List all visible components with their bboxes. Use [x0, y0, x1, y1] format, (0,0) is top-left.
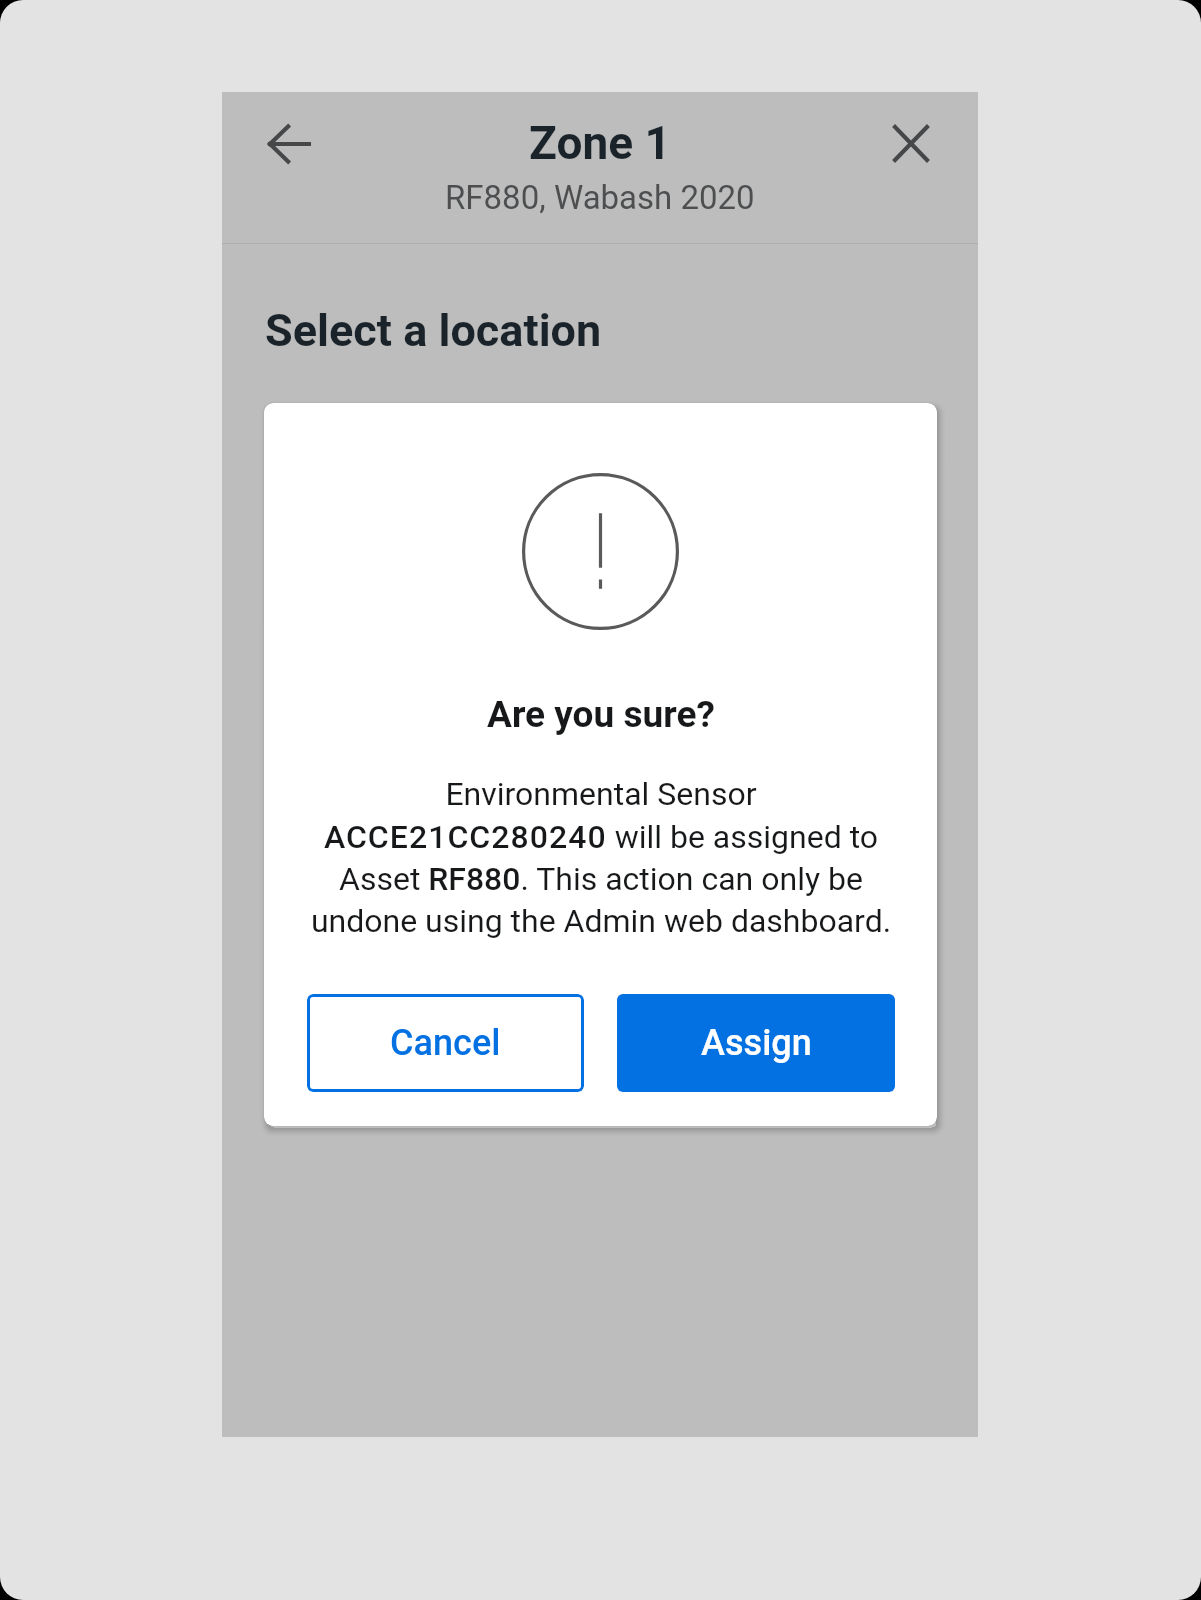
- staticText: Cancel: [390, 1022, 501, 1064]
- staticText: RF880, Wabash 2020: [445, 178, 755, 217]
- staticText: Select a location: [265, 304, 602, 357]
- button[interactable]: Assign: [617, 994, 895, 1092]
- button[interactable]: Cancel: [307, 994, 584, 1092]
- staticText: Are you sure?: [487, 693, 715, 736]
- staticText: Zone 1: [529, 116, 671, 170]
- button[interactable]: Close: [877, 109, 945, 177]
- button[interactable]: Back: [255, 110, 323, 178]
- staticText: Assign: [701, 1022, 812, 1064]
- staticText: Environmental Sensor ACCE21CC280240 will…: [301, 775, 901, 939]
